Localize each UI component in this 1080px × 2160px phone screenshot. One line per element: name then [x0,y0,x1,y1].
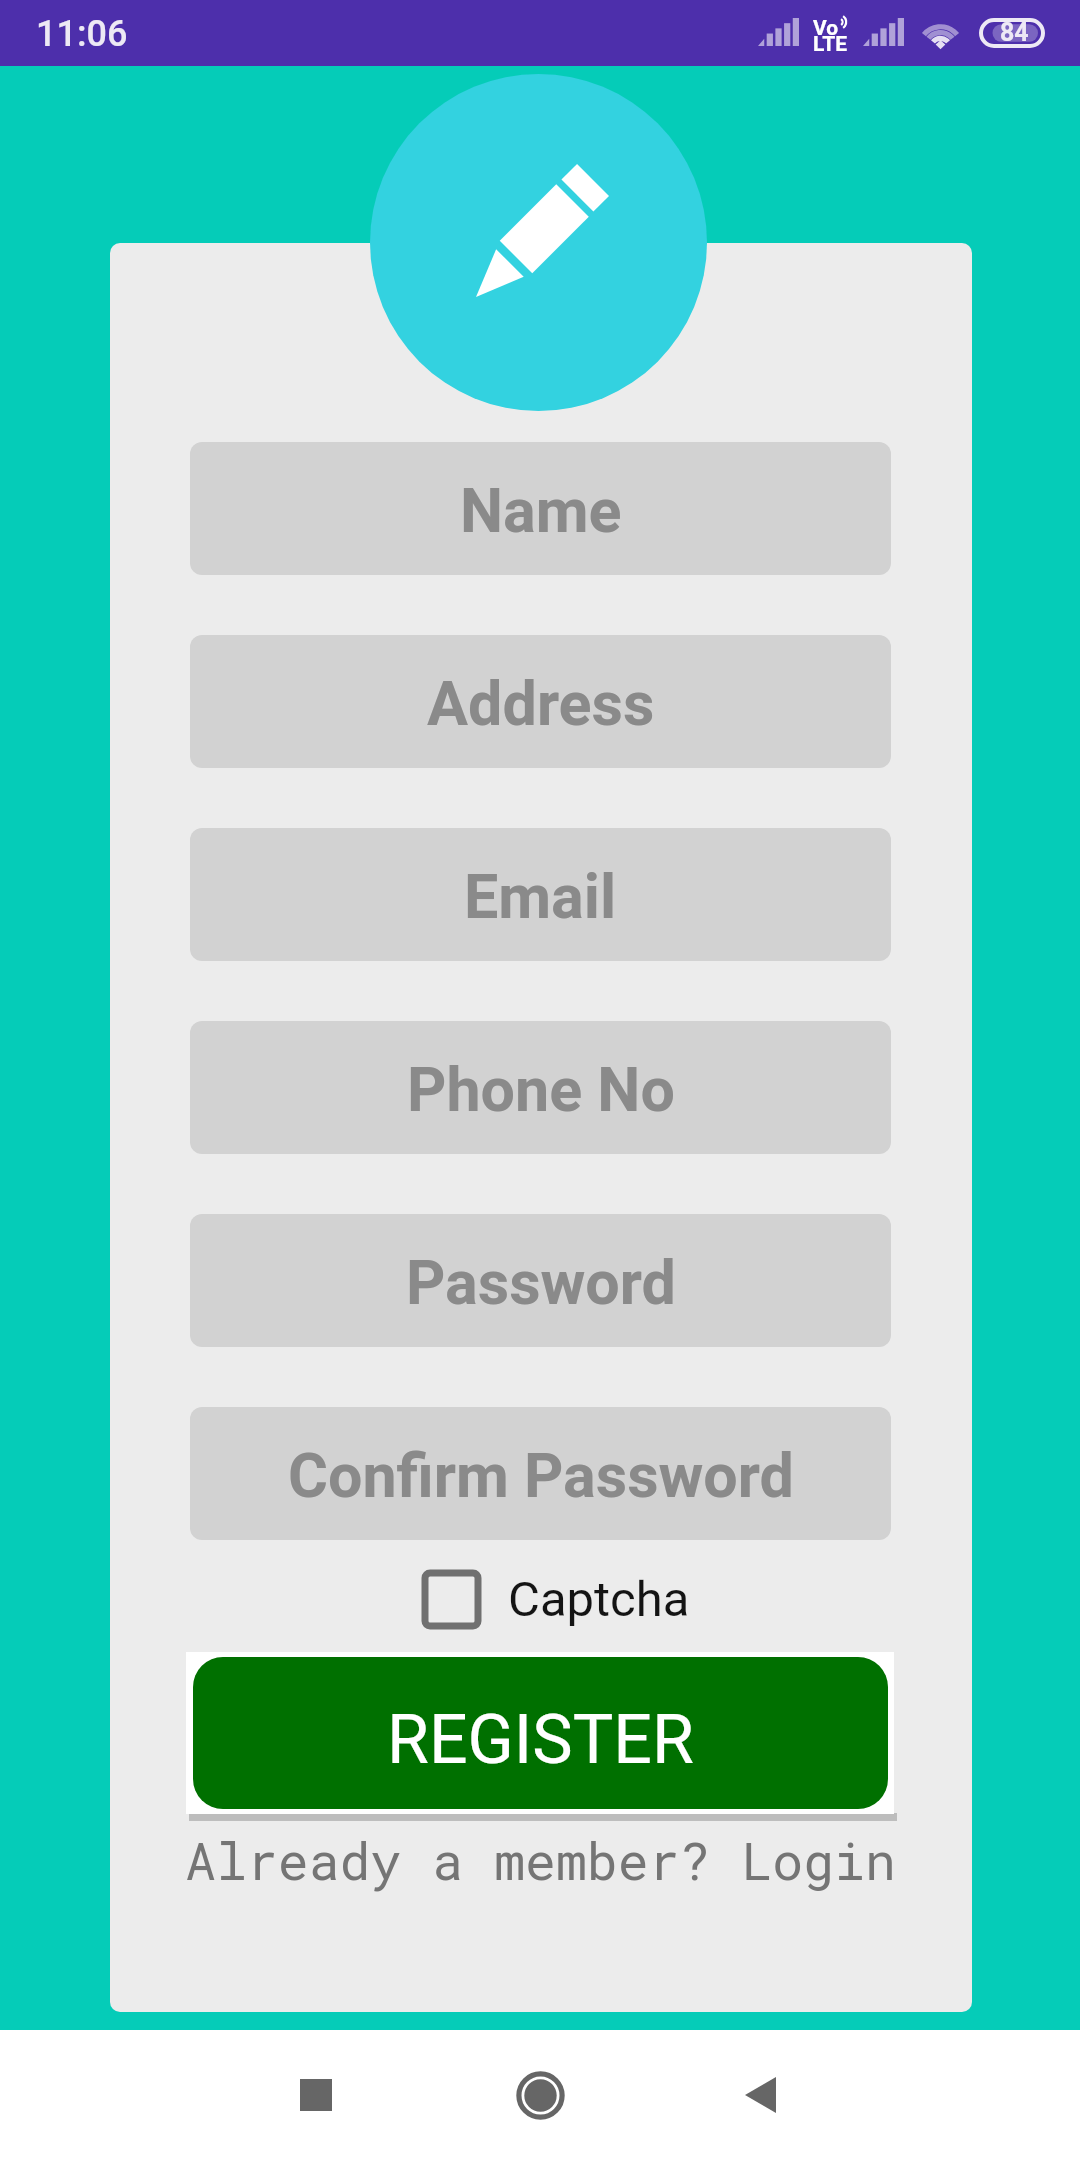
button[interactable]: Edit profile [370,74,707,411]
staticText: 84 [1000,18,1029,47]
button[interactable]: Already a member? Login [150,1814,930,1906]
staticText: Already a member? Login [185,1826,896,1894]
button[interactable]: Email [190,828,891,961]
staticText: LTE [813,32,848,57]
staticText: REGISTER [387,1700,694,1780]
staticText: Phone No [407,1054,675,1125]
staticText: Password [406,1247,676,1318]
staticText: Address [427,668,655,739]
staticText: Email [464,861,617,932]
button[interactable]: Recents [206,2028,426,2160]
button[interactable]: Home [430,2028,650,2160]
button[interactable]: Captcha [421,1558,690,1640]
button[interactable]: Name [190,442,891,575]
button[interactable]: Confirm Password [190,1407,891,1540]
staticText: Captcha [508,1571,690,1628]
button[interactable]: REGISTER [186,1652,894,1814]
button[interactable]: Password [190,1214,891,1347]
staticText: Confirm Password [288,1440,794,1511]
button[interactable]: Back [650,2028,870,2160]
staticText: Vo [813,16,839,41]
button[interactable]: Phone No [190,1021,891,1154]
staticText: Name [460,475,622,546]
staticText: 11:06 [36,13,128,55]
button[interactable]: Address [190,635,891,768]
